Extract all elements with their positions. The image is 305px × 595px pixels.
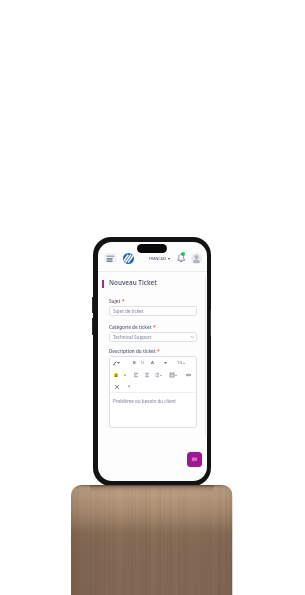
button[interactable]: Menu	[104, 253, 117, 263]
button[interactable]: help	[124, 382, 133, 391]
button[interactable]: u	[138, 358, 147, 367]
button[interactable]: pen	[110, 358, 119, 367]
button[interactable]: Profile	[191, 253, 202, 264]
button[interactable]: b	[130, 358, 139, 367]
button[interactable]: Nouveau Ticket	[109, 278, 157, 287]
staticText: Sujet de ticket	[113, 308, 144, 314]
staticText: U	[141, 360, 145, 366]
staticText: *	[157, 348, 160, 354]
staticText: Problème ou besoin du client	[113, 398, 176, 404]
button[interactable]: Technical Support	[109, 332, 197, 342]
button[interactable]: link	[184, 370, 193, 379]
button[interactable]: caret	[114, 358, 123, 367]
staticText: FRANCAIS	[149, 256, 167, 261]
staticText: ?	[128, 384, 130, 390]
button[interactable]: a	[148, 358, 157, 367]
staticText: Catégorie de ticket	[109, 324, 152, 330]
button[interactable]: Chat support	[187, 452, 202, 467]
staticText: Technical Support	[113, 334, 152, 340]
staticText: Description du ticket	[109, 348, 156, 354]
button[interactable]: FRANCAIS	[149, 256, 170, 261]
staticText: Nouveau Ticket	[109, 278, 157, 287]
button[interactable]: caret2	[161, 358, 170, 367]
button[interactable]: size	[176, 358, 185, 367]
button[interactable]: alignC	[142, 370, 151, 379]
staticText: B	[133, 360, 136, 366]
staticText: A	[115, 373, 118, 377]
button[interactable]: Problème ou besoin du client	[109, 393, 197, 428]
staticText: A	[151, 360, 154, 366]
button[interactable]: Logo	[123, 253, 134, 264]
button[interactable]: clear	[112, 382, 121, 391]
staticText: *	[153, 324, 156, 330]
button[interactable]: hl	[111, 370, 120, 379]
button[interactable]: alignL	[131, 370, 140, 379]
staticText: Sujet	[109, 298, 121, 304]
button[interactable]: indent	[169, 370, 178, 379]
button[interactable]: dot2	[120, 370, 129, 379]
button[interactable]: list	[154, 370, 163, 379]
button[interactable]: Sujet de ticket	[109, 306, 197, 316]
staticText: *	[122, 298, 125, 304]
button[interactable]: Notifications	[177, 253, 185, 263]
staticText: 14	[177, 360, 182, 366]
